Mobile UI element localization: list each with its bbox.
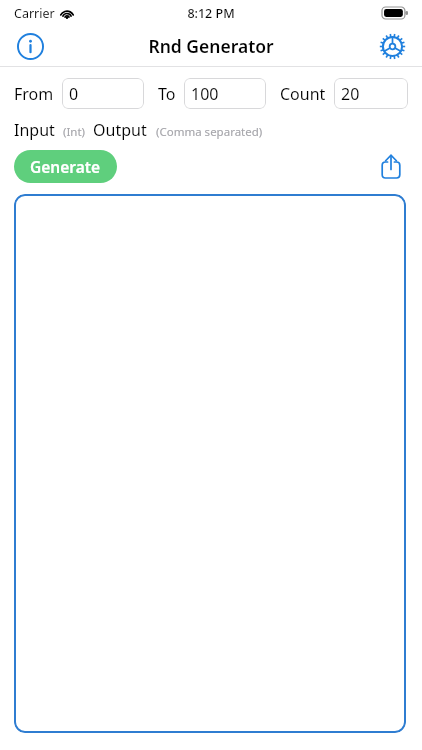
button[interactable]: 0 xyxy=(62,78,144,109)
button[interactable]: Generate xyxy=(14,150,117,183)
button[interactable]: 20 xyxy=(334,78,408,109)
button[interactable]: Info xyxy=(10,26,50,66)
staticText: (Int) xyxy=(63,124,86,140)
staticText: 0 xyxy=(69,83,79,105)
staticText: Input xyxy=(14,119,55,141)
staticText: Rnd Generator xyxy=(148,34,274,58)
staticText: To xyxy=(158,83,176,105)
staticText: Generate xyxy=(30,156,101,177)
staticText: Carrier xyxy=(14,5,55,22)
button[interactable]: 100 xyxy=(184,78,266,109)
staticText: Count xyxy=(280,83,326,105)
staticText: From xyxy=(14,83,54,105)
staticText: 100 xyxy=(191,83,219,105)
button[interactable]: Share xyxy=(374,150,408,183)
staticText: 8:12 PM xyxy=(187,5,235,22)
staticText: (Comma separated) xyxy=(156,124,263,140)
staticText: Output xyxy=(93,119,147,141)
staticText: 20 xyxy=(341,83,360,105)
button[interactable]: Settings xyxy=(372,26,412,66)
button[interactable] xyxy=(14,194,406,733)
